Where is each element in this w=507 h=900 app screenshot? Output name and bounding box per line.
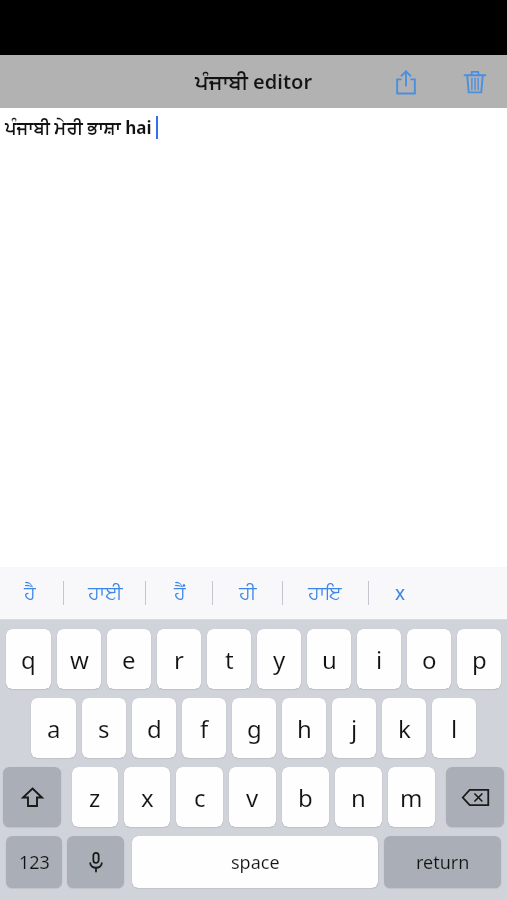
staticText: t [225,643,234,676]
staticText: g [247,712,262,745]
button[interactable]: h [282,698,326,758]
staticText: l [451,712,458,745]
button[interactable]: x [124,767,170,827]
staticText: x [141,781,154,814]
staticText: ਹੈ [24,584,36,603]
staticText: ਹਾਈ [88,584,123,603]
button[interactable]: g [232,698,276,758]
button[interactable]: p [457,629,501,689]
button[interactable]: o [407,629,451,689]
staticText: s [98,712,110,745]
button[interactable]: y [257,629,301,689]
staticText: w [70,643,89,676]
button[interactable]: Share [384,60,428,104]
button[interactable]: f [182,698,226,758]
staticText: d [147,712,162,745]
button[interactable]: t [207,629,251,689]
staticText: ਹਾਇ [308,584,342,603]
staticText: ਪੰਜਾਬੀ ਮੇਰੀ ਭਾਸ਼ਾ hai [5,116,152,139]
staticText: k [398,712,411,745]
button[interactable]: ਹੈ [0,567,63,619]
staticText: b [298,781,313,814]
staticText: y [273,643,286,676]
staticText: o [422,643,437,676]
button[interactable]: z [72,767,118,827]
button[interactable]: s [82,698,126,758]
staticText: return [416,850,470,875]
button[interactable]: k [382,698,426,758]
button[interactable]: r [157,629,201,689]
staticText: e [122,643,136,676]
button[interactable]: Shift [3,767,61,827]
button[interactable]: v [229,767,276,827]
button[interactable]: q [6,629,51,689]
staticText: x [395,580,406,606]
staticText: j [351,712,358,745]
button[interactable]: space [132,836,378,888]
staticText: h [297,712,312,745]
staticText: space [231,850,280,875]
button[interactable]: Delete [453,60,497,104]
staticText: m [400,781,423,814]
button[interactable]: Backspace [446,767,504,827]
staticText: ਹੀ [239,584,257,603]
button[interactable]: j [332,698,376,758]
button[interactable]: ਹਾਇ [292,567,358,619]
button[interactable]: d [132,698,176,758]
button[interactable]: b [282,767,329,827]
staticText: 123 [19,850,50,875]
staticText: n [351,781,366,814]
staticText: z [89,781,101,814]
staticText: u [322,643,337,676]
button[interactable]: ਹੀ [215,567,281,619]
staticText: v [246,781,259,814]
staticText: a [47,712,61,745]
staticText: p [472,643,487,676]
button[interactable]: c [176,767,223,827]
button[interactable]: ਹੈਂ [147,567,213,619]
button[interactable]: ਹਾਈ [72,567,138,619]
button[interactable]: m [388,767,435,827]
button[interactable]: return [384,836,501,888]
button[interactable]: Dictate [67,836,124,888]
button[interactable]: 123 [6,836,62,888]
staticText: ਪੰਜਾਬੀ editor [195,68,313,95]
staticText: i [376,643,383,676]
staticText: r [174,643,184,676]
button[interactable]: l [432,698,476,758]
button[interactable]: w [57,629,101,689]
button[interactable]: u [307,629,351,689]
staticText: f [200,712,209,745]
button[interactable]: x [367,567,433,619]
button[interactable]: e [107,629,151,689]
staticText: q [21,643,36,676]
button[interactable]: a [31,698,76,758]
staticText: ਹੈਂ [174,584,186,603]
button[interactable]: i [357,629,401,689]
button[interactable]: n [335,767,382,827]
staticText: c [194,781,206,814]
